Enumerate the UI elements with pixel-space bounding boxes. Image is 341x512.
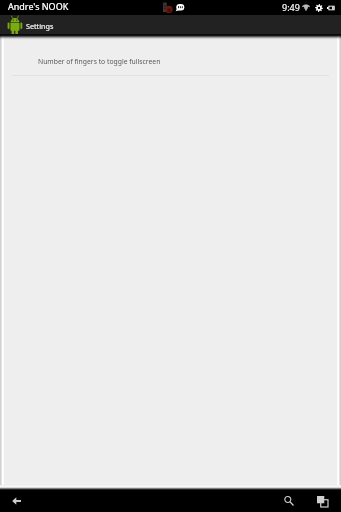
staticText: Andre's NOOK: [8, 0, 69, 12]
button[interactable]: Number of fingers to toggle fullscreen: [0, 48, 341, 75]
staticText: Settings: [26, 21, 54, 31]
staticText: 9:49: [282, 1, 300, 13]
button[interactable]: Recent apps: [313, 492, 331, 510]
button[interactable]: Back: [7, 492, 25, 510]
staticText: Number of fingers to toggle fullscreen: [38, 57, 161, 66]
button[interactable]: Search: [280, 492, 298, 510]
